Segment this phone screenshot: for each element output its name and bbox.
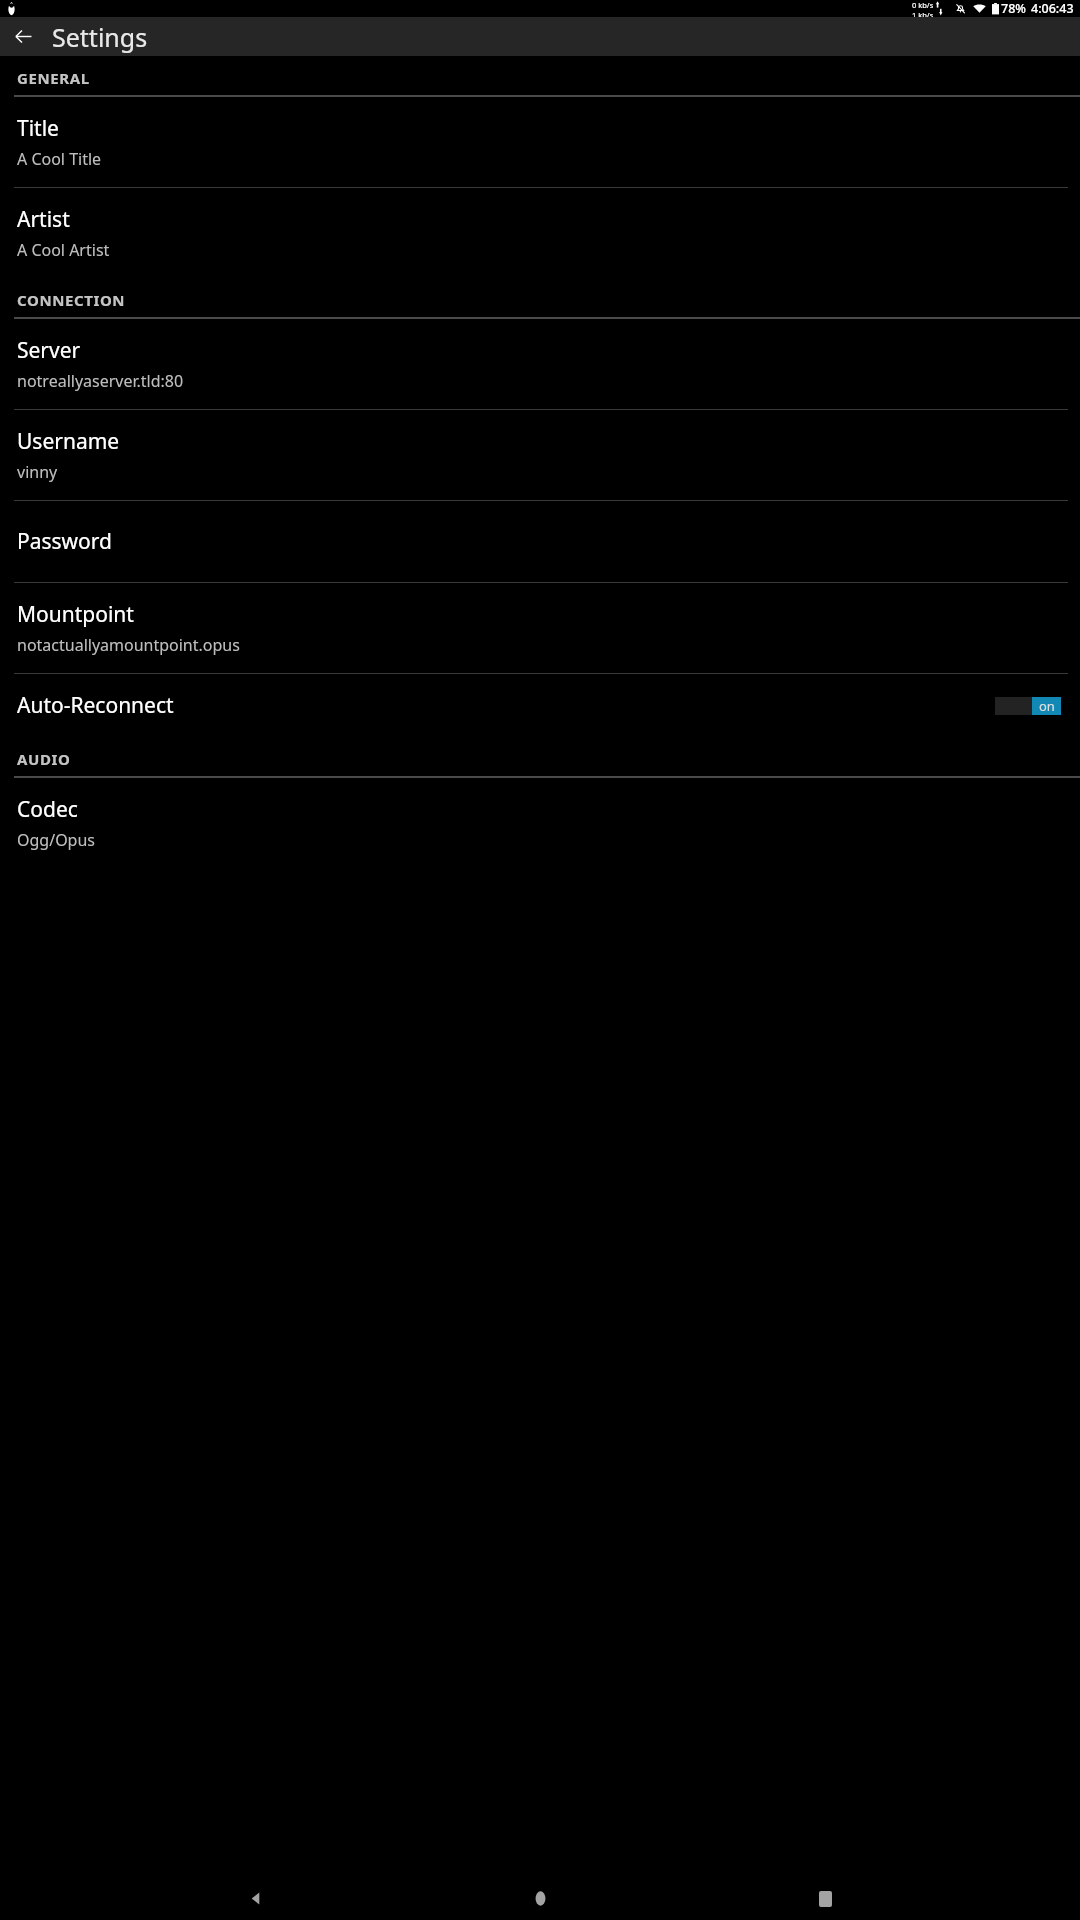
staticText: 0 kb/s (912, 0, 934, 10)
button[interactable]: Home (510, 1877, 570, 1920)
staticText: Ogg/Opus (17, 829, 96, 851)
staticText: 1 kb/s (912, 10, 934, 17)
staticText: Codec (17, 795, 78, 824)
button[interactable]: Password (0, 501, 1080, 582)
staticText: A Cool Title (17, 148, 102, 170)
staticText: CONNECTION (17, 290, 126, 310)
button[interactable]: Back (225, 1877, 285, 1920)
staticText: Artist (17, 205, 70, 234)
staticText: notreallyaserver.tld:80 (17, 370, 184, 392)
button[interactable]: Artist (0, 188, 1080, 278)
button[interactable]: Title (0, 97, 1080, 187)
button[interactable]: Username (0, 410, 1080, 500)
staticText: Settings (52, 20, 148, 54)
button[interactable]: Auto-Reconnect (0, 674, 1080, 737)
staticText: Password (17, 527, 112, 556)
button[interactable]: Codec (0, 778, 1080, 868)
button[interactable]: Recent apps (795, 1877, 855, 1920)
button[interactable]: Back (0, 17, 46, 56)
staticText: AUDIO (17, 749, 71, 769)
staticText: GENERAL (17, 68, 90, 88)
staticText: Auto-Reconnect (17, 691, 174, 720)
staticText: on (1039, 697, 1055, 715)
staticText: Username (17, 427, 120, 456)
staticText: Mountpoint (17, 600, 134, 629)
staticText: notactuallyamountpoint.opus (17, 634, 240, 656)
staticText: Title (17, 114, 59, 143)
staticText: Server (17, 336, 81, 365)
staticText: 78% (1001, 0, 1026, 17)
staticText: vinny (17, 461, 58, 483)
staticText: A Cool Artist (17, 239, 110, 261)
button[interactable]: Mountpoint (0, 583, 1080, 673)
button[interactable]: Auto-Reconnect on (995, 697, 1061, 715)
staticText: 4:06:43 (1031, 0, 1074, 17)
button[interactable]: Server (0, 319, 1080, 409)
